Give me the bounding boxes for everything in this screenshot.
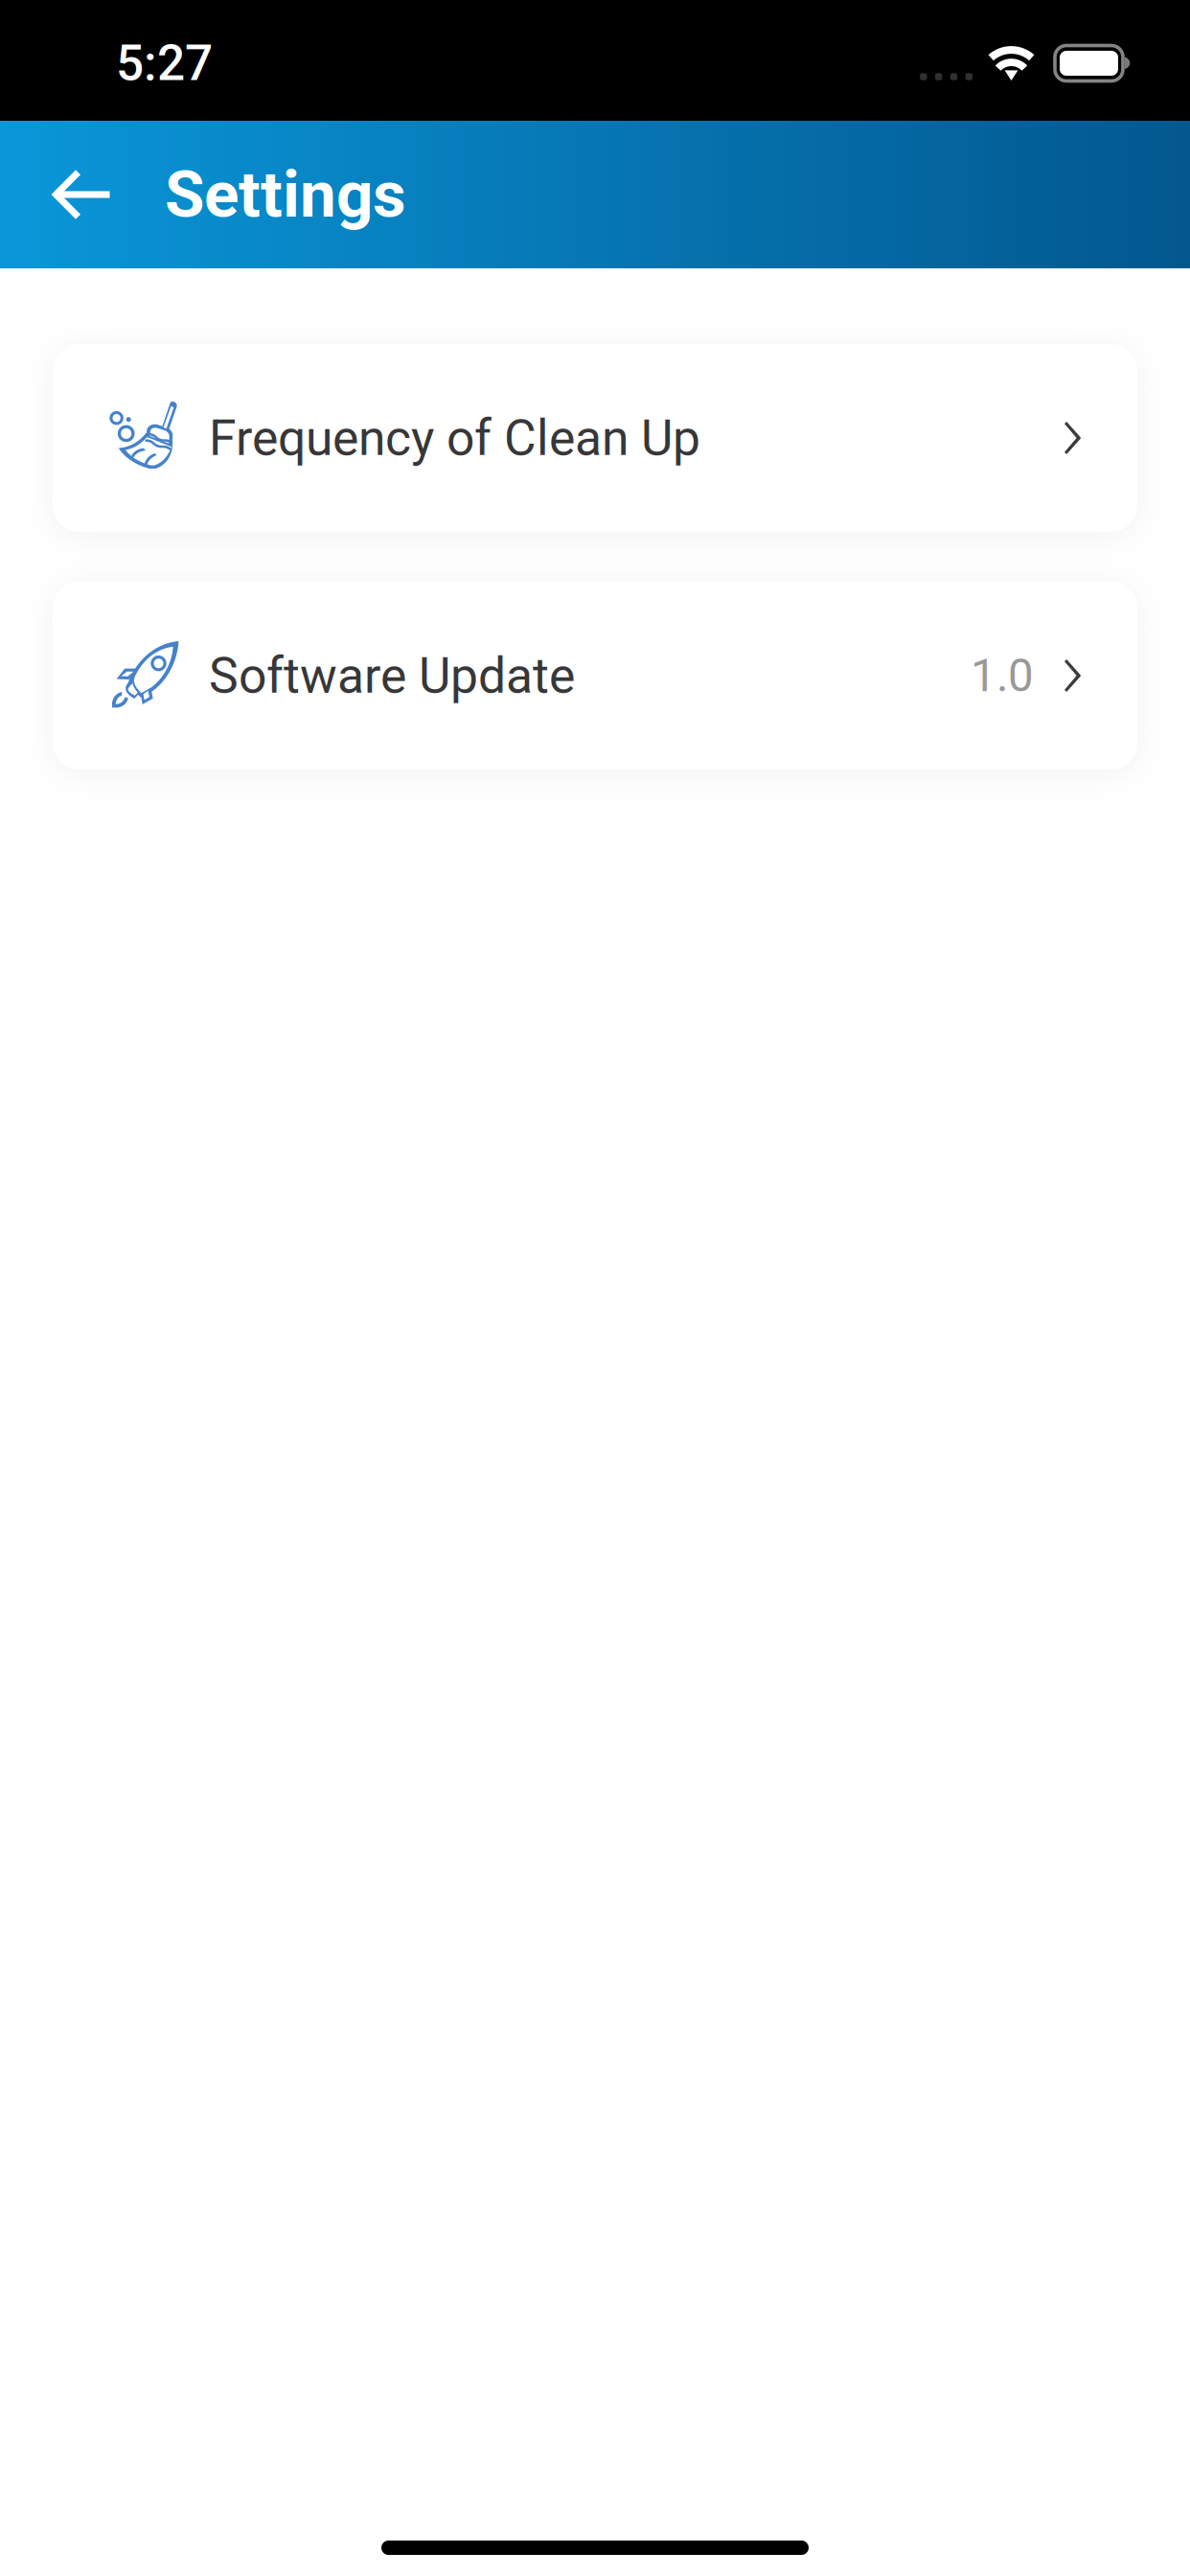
- staticText: Frequency of Clean Up: [209, 409, 700, 467]
- button[interactable]: Frequency of Clean Up: [0, 344, 1190, 532]
- staticText: Settings: [165, 157, 406, 232]
- staticText: Software Update: [209, 647, 575, 705]
- button[interactable]: Software Update: [0, 582, 1190, 770]
- staticText: 5:27: [116, 34, 213, 92]
- staticText: 1.0: [971, 649, 1034, 702]
- button[interactable]: Back: [22, 121, 139, 268]
